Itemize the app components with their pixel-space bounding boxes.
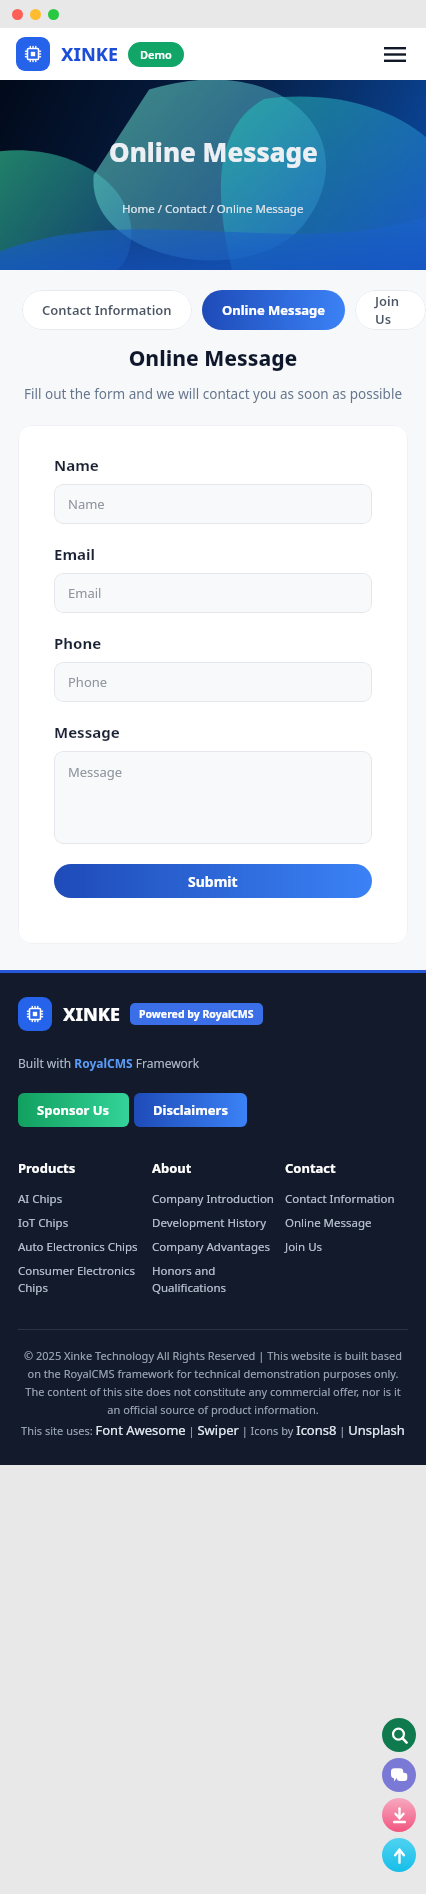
button[interactable]: Download: [382, 1798, 416, 1832]
button[interactable]: Company Introduction: [152, 1187, 275, 1211]
button[interactable]: Sponsor Us: [18, 1093, 129, 1127]
button[interactable]: Menu: [380, 39, 410, 69]
button[interactable]: Email: [54, 573, 372, 613]
button[interactable]: Join Us: [285, 1235, 408, 1259]
button[interactable]: Name: [54, 484, 372, 524]
staticText: Phone: [68, 673, 108, 691]
staticText: Online Message: [109, 134, 318, 169]
staticText: Email: [68, 584, 102, 602]
button[interactable]: Development History: [152, 1211, 275, 1235]
button[interactable]: Search: [382, 1718, 416, 1752]
button[interactable]: Demo: [128, 42, 184, 67]
staticText: Message: [54, 722, 120, 742]
button[interactable]: IoT Chips: [18, 1211, 142, 1235]
staticText: Name: [68, 495, 105, 513]
button[interactable]: Contact Information: [22, 290, 192, 330]
staticText: Online Message: [222, 301, 325, 319]
staticText: About: [152, 1159, 192, 1177]
button[interactable]: Join Us: [355, 290, 426, 330]
staticText: Email: [54, 544, 95, 564]
button[interactable]: Submit: [54, 864, 372, 898]
button[interactable]: Powered by RoyalCMS: [130, 1003, 263, 1025]
button[interactable]: Consumer Electronics Chips: [18, 1259, 142, 1299]
staticText: Disclaimers: [153, 1101, 228, 1119]
staticText: Phone: [54, 633, 102, 653]
button[interactable]: Disclaimers: [134, 1093, 247, 1127]
button[interactable]: Company Advantages: [152, 1235, 275, 1259]
staticText: This site uses: Font Awesome | Swiper | …: [18, 1421, 408, 1439]
button[interactable]: Phone: [54, 662, 372, 702]
staticText: Message: [68, 763, 123, 781]
staticText: Online Message: [0, 344, 426, 373]
staticText: XINKE: [61, 42, 118, 67]
button[interactable]: Chat: [382, 1758, 416, 1792]
staticText: Contact: [285, 1159, 336, 1177]
staticText: Sponsor Us: [37, 1101, 110, 1119]
button[interactable]: Honors and Qualifications: [152, 1259, 275, 1299]
staticText: Demo: [140, 47, 172, 62]
button[interactable]: Auto Electronics Chips: [18, 1235, 142, 1259]
staticText: © 2025 Xinke Technology All Rights Reser…: [18, 1348, 408, 1417]
button[interactable]: Contact Information: [285, 1187, 408, 1211]
button[interactable]: Online Message: [202, 290, 345, 330]
button[interactable]: XINKE: [16, 37, 118, 71]
staticText: Home / Contact / Online Message: [122, 201, 304, 217]
staticText: Built with RoyalCMS Framework: [18, 1055, 200, 1071]
button[interactable]: Message: [54, 751, 372, 844]
staticText: XINKE: [63, 1002, 120, 1027]
staticText: Submit: [188, 872, 238, 891]
staticText: Fill out the form and we will contact yo…: [24, 385, 402, 403]
staticText: Powered by RoyalCMS: [139, 1007, 254, 1021]
staticText: Name: [54, 455, 99, 475]
staticText: Join Us: [375, 292, 406, 328]
button[interactable]: Back to top: [382, 1838, 416, 1872]
staticText: Contact Information: [42, 301, 172, 319]
button[interactable]: AI Chips: [18, 1187, 142, 1211]
button[interactable]: Online Message: [285, 1211, 408, 1235]
staticText: Products: [18, 1159, 76, 1177]
